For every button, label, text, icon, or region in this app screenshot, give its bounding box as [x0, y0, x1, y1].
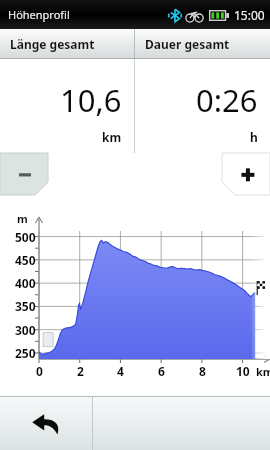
- staticText: 4: [117, 363, 124, 379]
- staticText: 2: [77, 363, 84, 379]
- staticText: 8: [199, 363, 206, 379]
- staticText: h: [250, 129, 258, 145]
- button[interactable]: Zoom in: [222, 153, 270, 195]
- button[interactable]: Zoom out: [0, 153, 48, 195]
- staticText: 500: [15, 229, 36, 245]
- staticText: 0:26: [196, 79, 258, 121]
- staticText: 15:00: [234, 7, 265, 23]
- button[interactable]: Back: [0, 397, 92, 450]
- other: Bluetooth: [168, 8, 182, 23]
- staticText: m: [17, 211, 28, 226]
- staticText: 10: [236, 363, 250, 379]
- staticText: km: [256, 364, 270, 379]
- staticText: 10,6: [60, 79, 122, 121]
- staticText: 350: [15, 298, 36, 314]
- staticText: Dauer gesamt: [145, 36, 230, 52]
- staticText: Länge gesamt: [10, 36, 95, 52]
- staticText: 400: [15, 275, 36, 291]
- staticText: 6: [158, 363, 165, 379]
- staticText: 300: [15, 322, 36, 338]
- staticText: 450: [15, 252, 36, 268]
- staticText: km: [102, 129, 122, 145]
- staticText: 250: [15, 345, 36, 361]
- staticText: Höhenprofil: [8, 7, 70, 22]
- other: Bike sensor: [186, 8, 203, 23]
- other: Battery: [209, 10, 229, 21]
- staticText: 0: [36, 363, 43, 379]
